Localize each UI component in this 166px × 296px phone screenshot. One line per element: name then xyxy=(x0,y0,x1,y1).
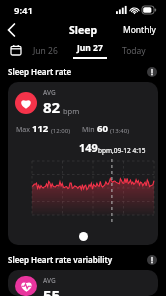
staticText: Today xyxy=(122,45,146,57)
staticText: Monthly xyxy=(123,24,156,36)
staticText: Max xyxy=(16,125,30,135)
button[interactable]: AVG xyxy=(8,82,158,245)
button[interactable]: Scrubber xyxy=(79,232,88,241)
staticText: Sleep xyxy=(69,23,98,37)
button[interactable]: Monthly xyxy=(123,24,156,36)
button[interactable]: Today xyxy=(112,45,156,57)
staticText: bpm,09-12 4:15 xyxy=(98,146,146,155)
staticText: 82 xyxy=(43,97,61,117)
button[interactable]: Information xyxy=(145,253,158,266)
staticText: Sleep Heart rate xyxy=(8,66,72,77)
staticText: Jun 27 xyxy=(77,42,103,54)
button[interactable]: Calendar xyxy=(8,42,24,58)
staticText: 55 xyxy=(43,285,61,296)
button[interactable]: Jun 27 xyxy=(68,42,112,59)
staticText: AVG xyxy=(43,276,56,285)
staticText: AVG xyxy=(43,88,56,97)
button[interactable]: Information xyxy=(145,65,158,78)
staticText: (12:00) xyxy=(51,127,70,135)
staticText: 112 xyxy=(32,122,49,135)
button[interactable]: Jun 26 xyxy=(22,45,68,57)
staticText: bpm xyxy=(63,106,80,116)
button[interactable]: AVG xyxy=(8,270,158,296)
staticText: 60 xyxy=(97,122,108,135)
staticText: 9:41 xyxy=(14,4,33,17)
button[interactable]: Back xyxy=(0,20,22,40)
staticText: Jun 26 xyxy=(33,45,58,57)
staticText: Sleep Heart rate variability xyxy=(8,254,113,265)
staticText: Min xyxy=(82,125,95,135)
staticText: (13:40) xyxy=(110,127,129,135)
staticText: 149 xyxy=(79,140,98,155)
